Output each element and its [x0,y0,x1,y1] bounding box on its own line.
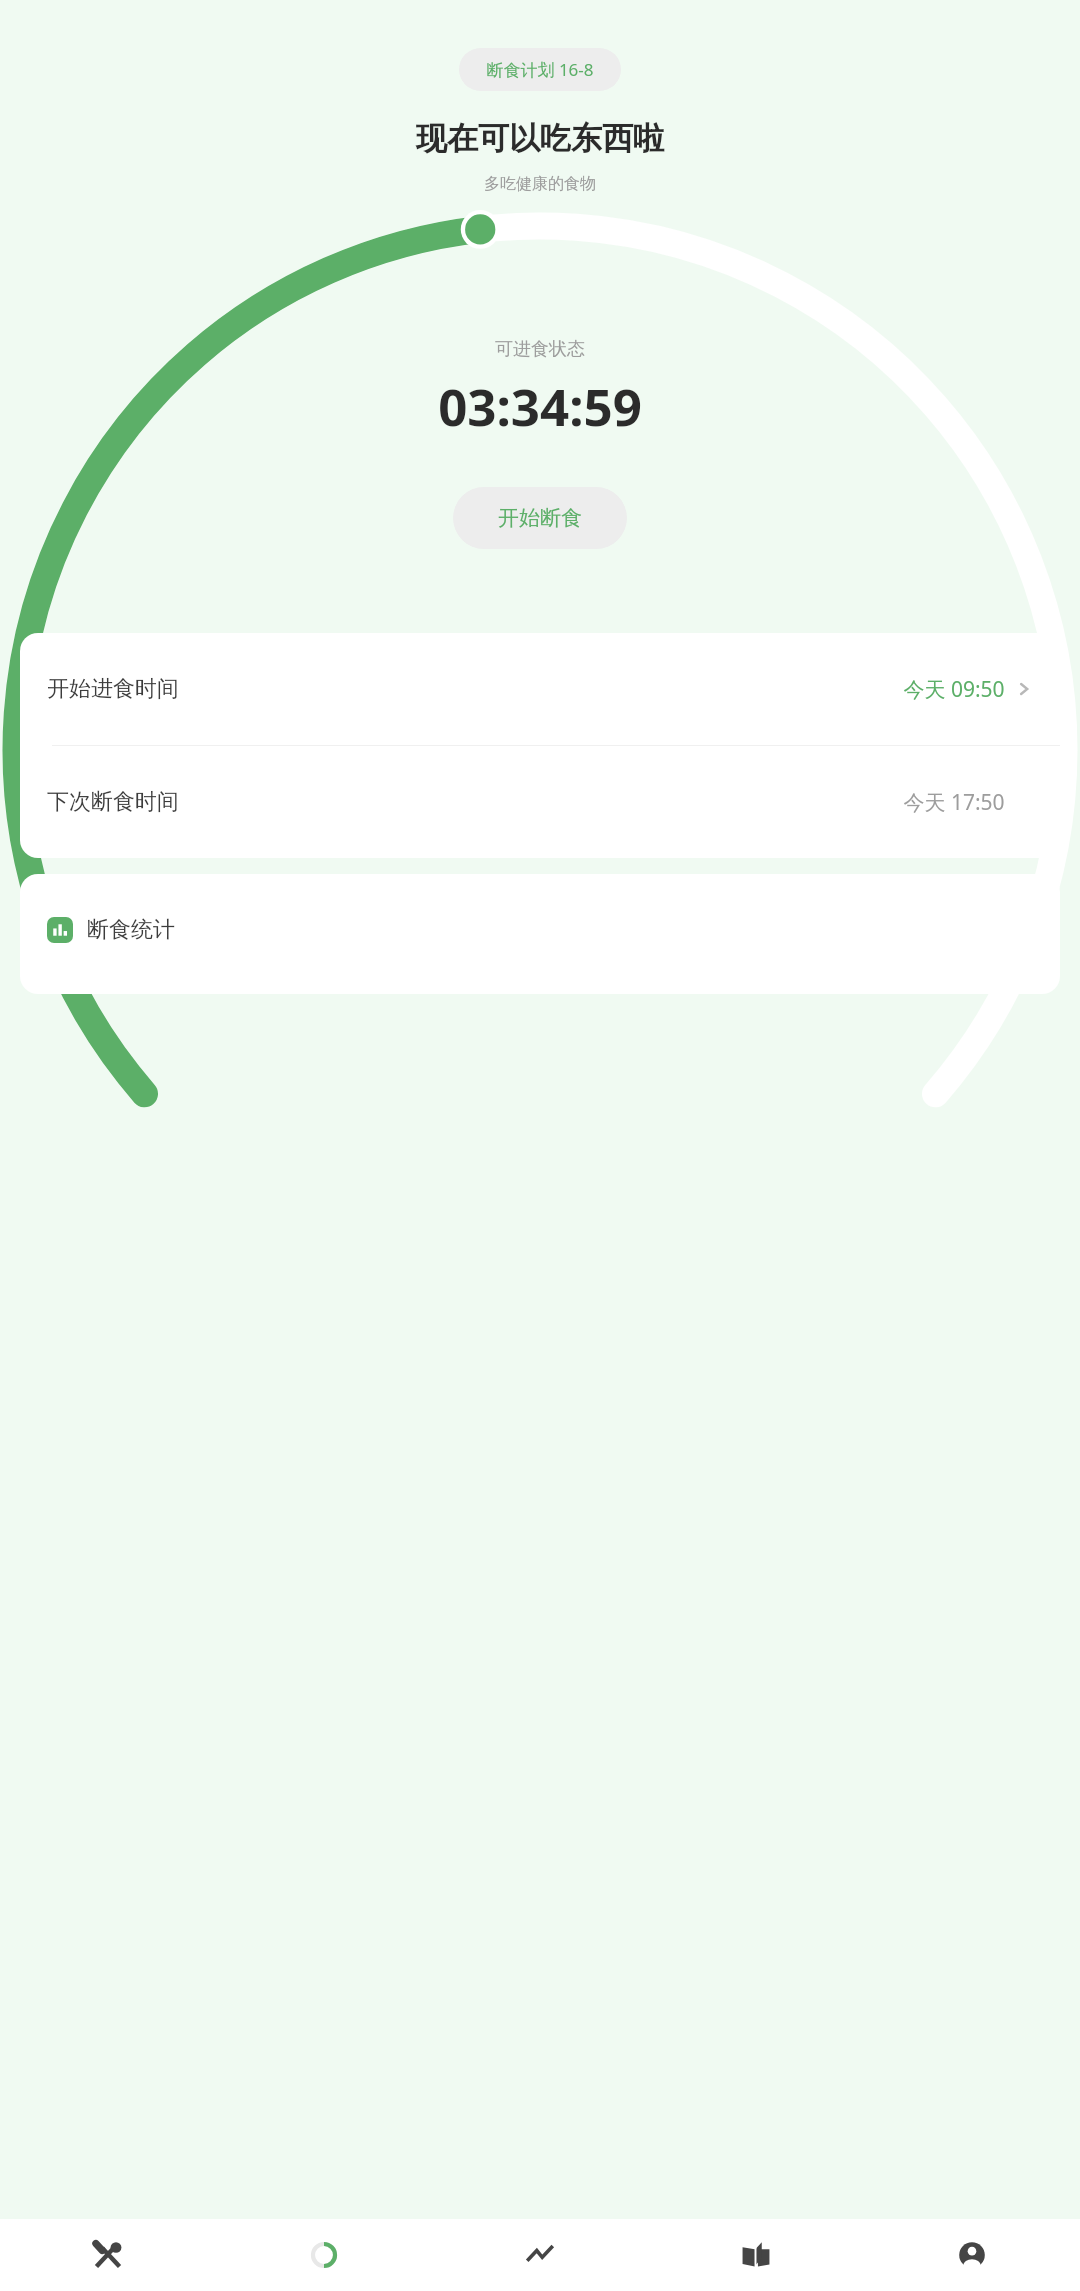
staticText: 现在可以吃东西啦 [416,119,664,158]
staticText: 今天 17:50 [903,788,1005,817]
button[interactable]: 断食统计 [20,874,1060,994]
staticText: 开始断食 [498,505,582,531]
staticText: 开始进食时间 [47,675,179,703]
staticText: 多吃健康的食物 [484,174,596,194]
staticText: 可进食状态 [495,338,585,361]
button[interactable]: Profile [864,2219,1080,2291]
staticText: 今天 09:50 [903,675,1005,704]
button[interactable]: 开始断食 [453,487,627,549]
staticText: 断食计划 16-8 [486,58,594,81]
button[interactable]: Trends [432,2219,648,2291]
button[interactable]: 断食计划 16-8 [459,48,621,91]
staticText: 断食统计 [87,916,175,944]
button[interactable]: 下次断食时间 [20,746,1060,858]
button[interactable]: Fasting timer [216,2219,432,2291]
button[interactable]: Learn [648,2219,864,2291]
staticText: 下次断食时间 [47,788,179,816]
button[interactable]: Meals [0,2219,216,2291]
button[interactable]: 开始进食时间 [20,633,1060,745]
staticText: 03:34:59 [438,371,642,440]
